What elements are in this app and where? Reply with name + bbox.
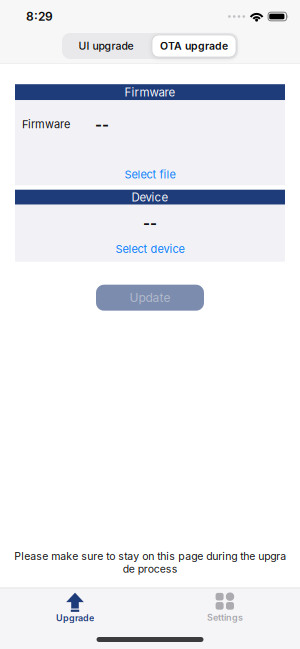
- button[interactable]: Update: [96, 285, 204, 311]
- button[interactable]: Upgrade: [0, 592, 150, 623]
- staticText: Firmware: [22, 118, 70, 131]
- button[interactable]: Settings: [150, 593, 300, 623]
- button[interactable]: OTA upgrade: [150, 33, 238, 59]
- button[interactable]: Select device: [115, 242, 184, 256]
- staticText: Upgrade: [56, 612, 94, 623]
- staticText: UI upgrade: [78, 40, 133, 52]
- staticText: OTA upgrade: [160, 40, 228, 52]
- staticText: Update: [129, 290, 170, 305]
- staticText: Settings: [207, 612, 243, 623]
- staticText: Please make sure to stay on this page du…: [14, 550, 286, 575]
- staticText: --: [95, 115, 109, 133]
- staticText: Select file: [124, 168, 175, 181]
- staticText: Firmware: [124, 85, 175, 99]
- staticText: 8:29: [26, 9, 53, 24]
- staticText: --: [143, 214, 157, 232]
- button[interactable]: Select file: [124, 168, 175, 181]
- staticText: Device: [131, 190, 168, 204]
- staticText: Select device: [115, 242, 184, 256]
- button[interactable]: UI upgrade: [62, 33, 150, 59]
